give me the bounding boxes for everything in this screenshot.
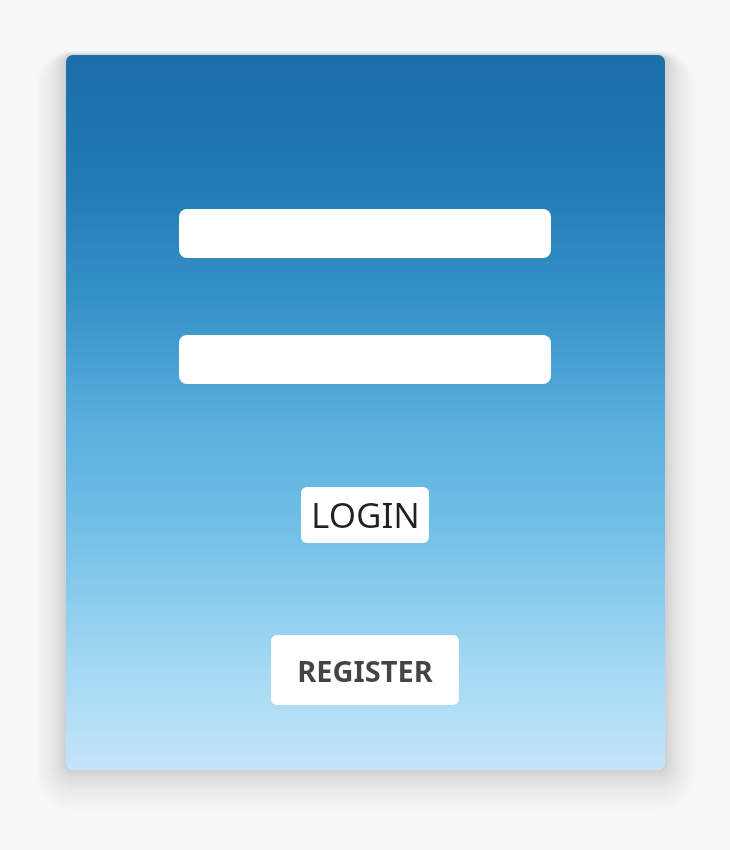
staticText: REGISTER (297, 651, 433, 690)
staticText: LOGIN (311, 491, 420, 539)
button[interactable]: LOGIN (301, 487, 429, 543)
button[interactable]: Email input field (179, 209, 551, 258)
button[interactable]: REGISTER (271, 635, 459, 705)
button[interactable]: Password input field (179, 335, 551, 384)
